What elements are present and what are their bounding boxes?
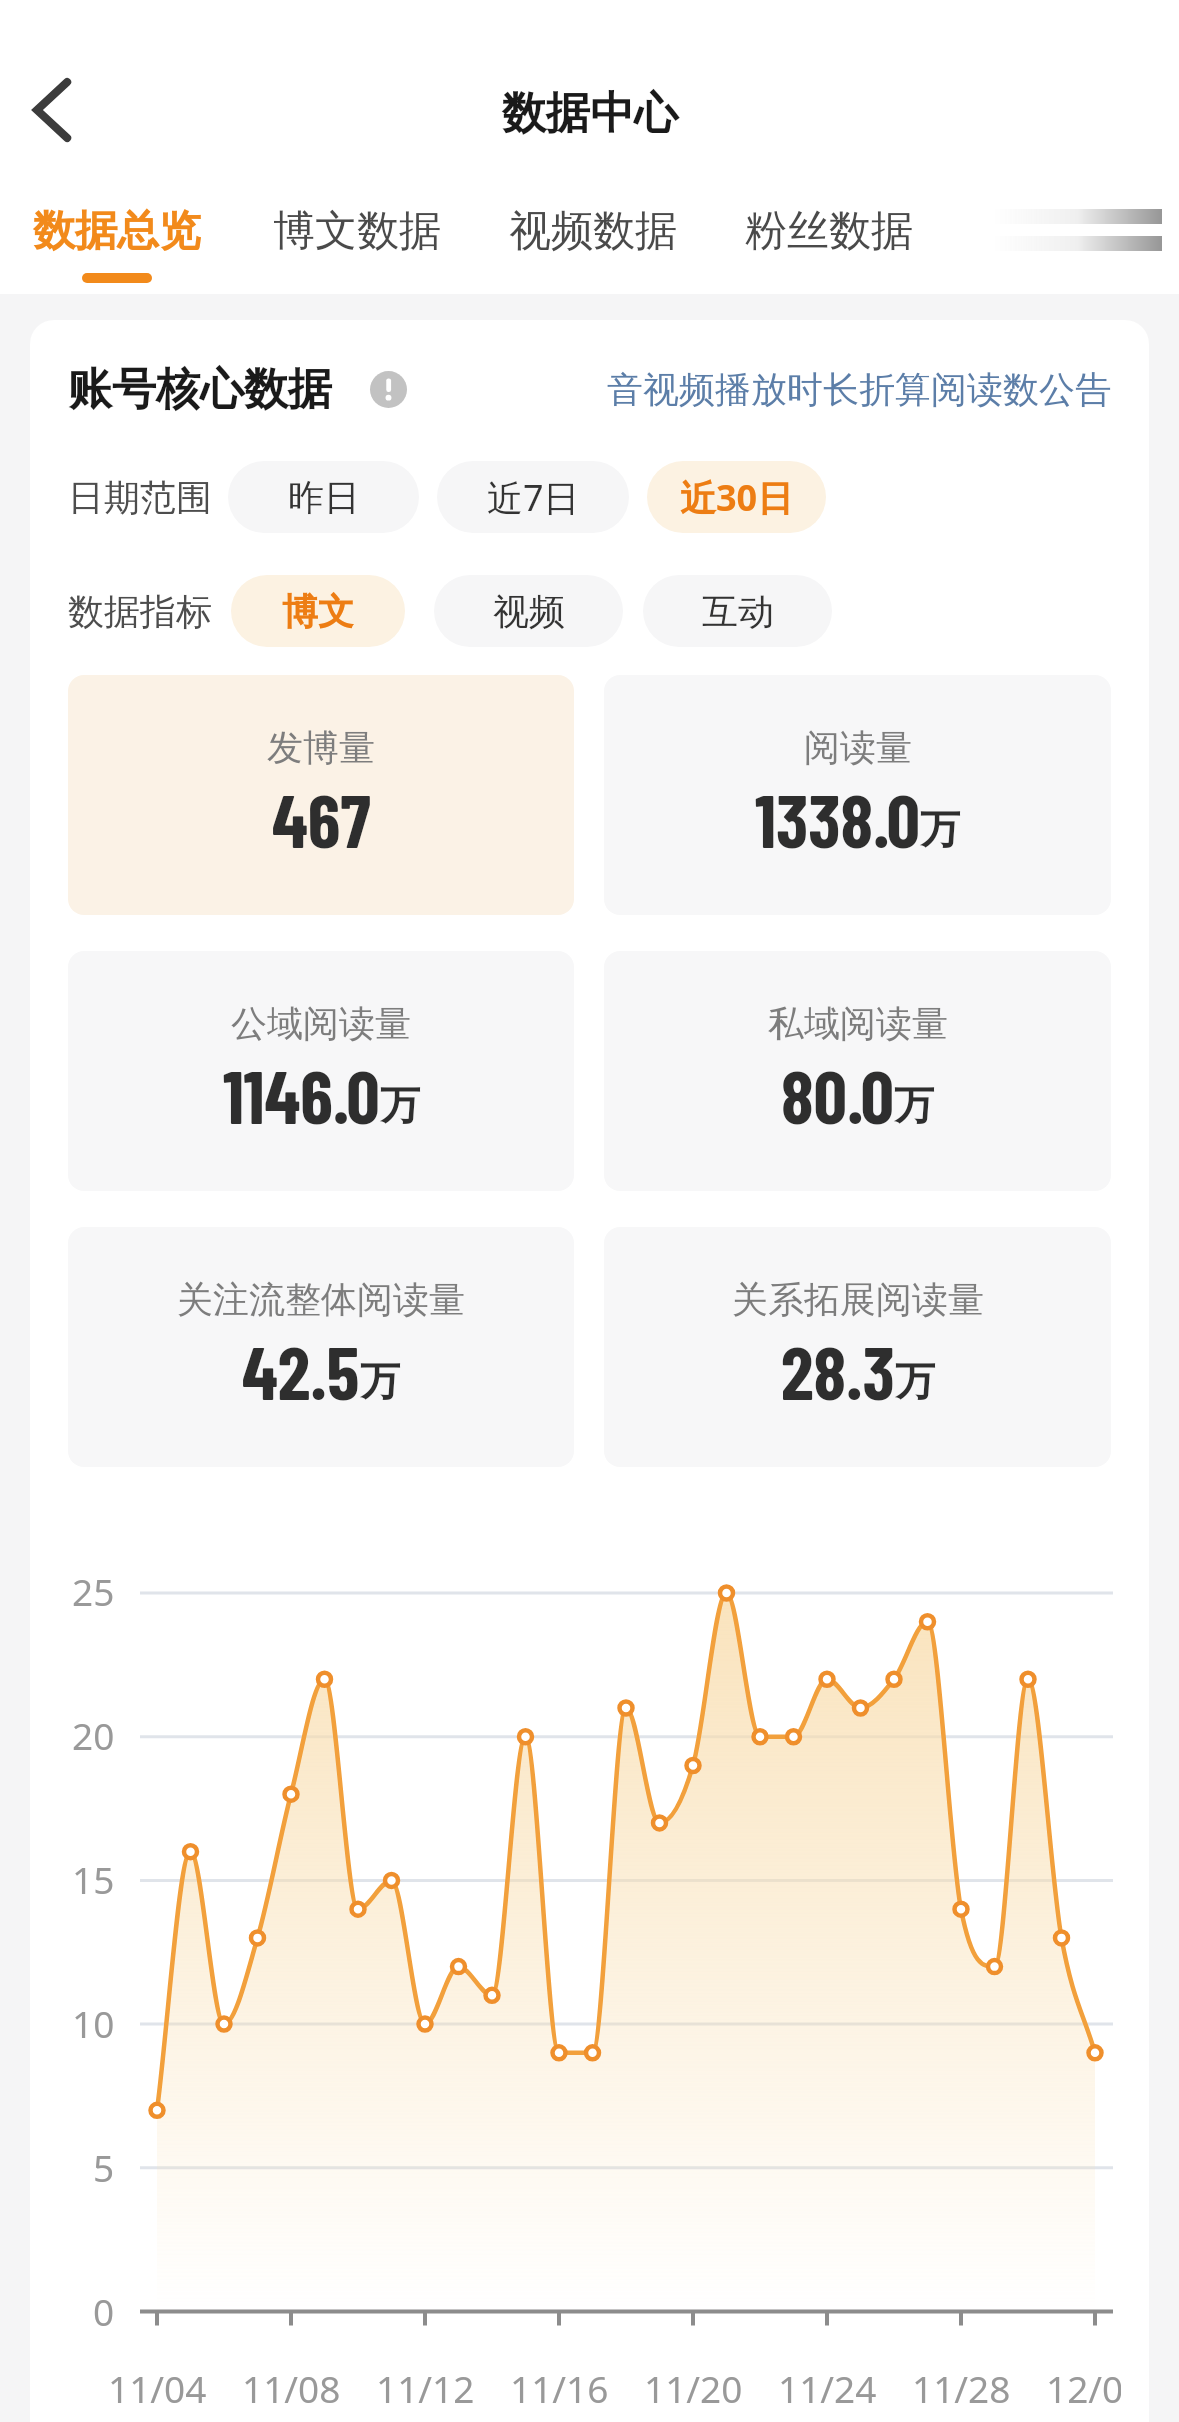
staticText: 互动: [702, 589, 774, 634]
staticText: 阅读量: [804, 725, 912, 770]
staticText: 11/20: [644, 2363, 743, 2413]
staticText: 数据中心: [502, 86, 678, 141]
button[interactable]: 音视频播放时长折算阅读数公告: [607, 367, 1111, 412]
button[interactable]: 关系拓展阅读量: [604, 1227, 1111, 1467]
staticText: 昨日: [288, 475, 360, 520]
button[interactable]: 昨日: [228, 461, 419, 533]
staticText: 近7日: [487, 473, 580, 522]
staticText: 万: [894, 1080, 934, 1130]
button[interactable]: 私域阅读量: [604, 951, 1111, 1191]
staticText: 万: [920, 804, 960, 854]
staticText: 私域阅读量: [768, 1001, 948, 1046]
staticText: 28.3: [781, 1326, 895, 1415]
staticText: 11/04: [108, 2363, 207, 2413]
staticText: 万: [895, 1356, 935, 1406]
staticText: 11/24: [778, 2363, 877, 2413]
button[interactable]: 发博量: [68, 675, 574, 915]
button[interactable]: 关注流整体阅读量: [68, 1227, 574, 1467]
staticText: 11/28: [912, 2363, 1011, 2413]
button[interactable]: 近30日: [647, 461, 826, 533]
staticText: 10: [72, 1998, 115, 2048]
staticText: 12/02: [1046, 2363, 1121, 2413]
staticText: 账号核心数据: [68, 362, 332, 417]
staticText: 关系拓展阅读量: [732, 1277, 984, 1322]
staticText: 11/12: [376, 2363, 475, 2413]
staticText: 粉丝数据: [745, 205, 913, 258]
button[interactable]: 视频数据: [509, 163, 677, 294]
button[interactable]: 阅读量: [604, 675, 1111, 915]
staticText: 数据指标: [68, 589, 212, 634]
button[interactable]: 公域阅读量: [68, 951, 574, 1191]
staticText: 5: [93, 2142, 115, 2192]
staticText: 11/16: [510, 2363, 609, 2413]
staticText: 80.0: [781, 1050, 894, 1139]
button[interactable]: [28, 82, 84, 138]
staticText: 博文数据: [273, 205, 441, 258]
staticText: 20: [72, 1710, 115, 1760]
staticText: 公域阅读量: [231, 1001, 411, 1046]
staticText: 视频: [493, 589, 565, 634]
button[interactable]: 视频: [434, 575, 623, 647]
button[interactable]: 数据总览: [33, 163, 201, 294]
staticText: 42.5: [242, 1326, 360, 1415]
staticText: 发博量: [267, 725, 375, 770]
button[interactable]: 互动: [643, 575, 832, 647]
button[interactable]: 粉丝数据: [745, 163, 913, 294]
staticText: 日期范围: [68, 475, 212, 520]
staticText: 0: [93, 2286, 115, 2336]
button[interactable]: 博文: [231, 575, 405, 647]
button[interactable]: 近7日: [437, 461, 629, 533]
staticText: 1146.0: [223, 1050, 380, 1139]
staticText: 近30日: [680, 473, 794, 522]
staticText: 数据总览: [33, 205, 201, 258]
staticText: 467: [272, 774, 371, 863]
staticText: 视频数据: [509, 205, 677, 258]
staticText: 11/08: [242, 2363, 341, 2413]
staticText: 万: [360, 1356, 400, 1406]
staticText: 15: [72, 1854, 115, 1904]
staticText: 关注流整体阅读量: [177, 1277, 465, 1322]
staticText: 1338.0: [755, 774, 920, 863]
button[interactable]: 博文数据: [273, 163, 441, 294]
staticText: 万: [380, 1080, 420, 1130]
staticText: 博文: [282, 589, 354, 634]
staticText: 25: [72, 1566, 115, 1616]
